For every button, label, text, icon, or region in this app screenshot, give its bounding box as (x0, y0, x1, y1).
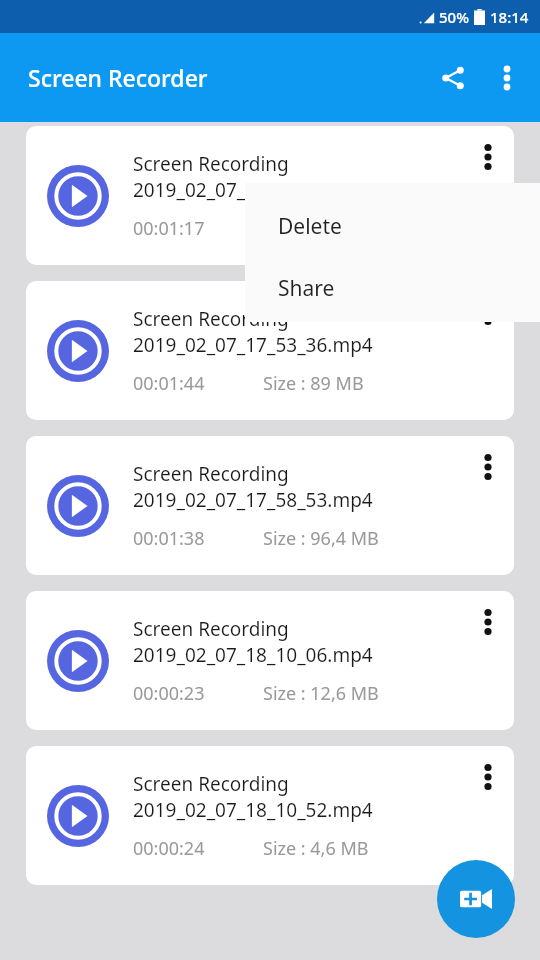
button[interactable]: Screen Recording 2019_02_07_17_58_53.mp4 (26, 436, 514, 575)
button[interactable]: More options (462, 436, 514, 575)
staticText: Screen Recording 2019_02_07_18_10_06.mp4 (133, 616, 373, 667)
staticText: 00:01:44 (133, 371, 205, 396)
button[interactable]: Share (426, 51, 480, 105)
button[interactable]: More options (462, 126, 514, 265)
button[interactable]: More options (462, 591, 514, 730)
staticText: Share (278, 274, 335, 303)
staticText: 00:00:24 (133, 836, 205, 861)
staticText: Screen Recording 2019_02_07_17_48_49.mp4 (133, 151, 373, 202)
button[interactable]: New recording (437, 860, 515, 938)
staticText: 18:14 (490, 7, 529, 27)
staticText: Size : 62 MB (263, 216, 364, 241)
button[interactable]: More options (480, 51, 534, 105)
button[interactable]: More options (462, 746, 514, 885)
staticText: Size : 89 MB (263, 371, 364, 396)
button[interactable]: Screen Recording 2019_02_07_17_53_36.mp4 (26, 281, 514, 420)
staticText: Size : 12,6 MB (263, 681, 379, 706)
button[interactable]: Screen Recording 2019_02_07_17_48_49.mp4 (26, 126, 514, 265)
button[interactable]: Screen Recording 2019_02_07_18_10_52.mp4 (26, 746, 514, 885)
button[interactable]: Share (245, 257, 540, 319)
staticText: Screen Recorder (28, 62, 208, 93)
staticText: 00:00:23 (133, 681, 205, 706)
staticText: 50% (439, 7, 469, 27)
staticText: Delete (278, 212, 342, 241)
staticText: Size : 4,6 MB (263, 836, 369, 861)
staticText: Screen Recording 2019_02_07_17_58_53.mp4 (133, 461, 373, 512)
staticText: Size : 96,4 MB (263, 526, 379, 551)
staticText: 00:01:17 (133, 216, 205, 241)
staticText: 00:01:38 (133, 526, 205, 551)
staticText: Screen Recording 2019_02_07_18_10_52.mp4 (133, 771, 373, 822)
button[interactable]: More options (462, 281, 514, 420)
button[interactable]: Screen Recording 2019_02_07_18_10_06.mp4 (26, 591, 514, 730)
button[interactable]: Delete (245, 195, 540, 257)
staticText: Screen Recording 2019_02_07_17_53_36.mp4 (133, 306, 373, 357)
